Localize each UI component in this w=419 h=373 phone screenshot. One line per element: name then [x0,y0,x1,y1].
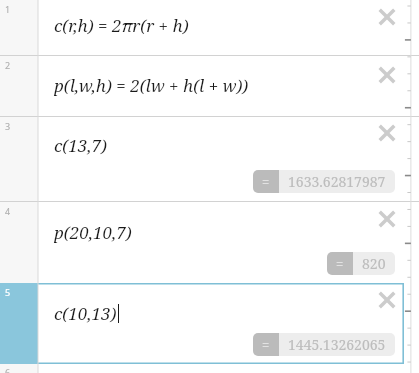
button[interactable]: 3 [0,117,38,201]
button[interactable]: 4 [0,202,38,283]
staticText: 3 [5,120,11,132]
staticText: = [262,173,270,191]
staticText: = [262,336,270,354]
staticText: = [336,255,344,273]
staticText: 6 [5,366,11,373]
button[interactable]: 2 [0,56,38,116]
button[interactable]: c(13,7) [38,117,404,201]
button[interactable]: Delete expression [374,120,400,146]
staticText: p(20,10,7) [54,221,132,244]
button[interactable]: c(r,h) = 2πr(r + h) [38,0,404,55]
staticText: 1633.62817987 [288,172,386,191]
staticText: p(l,w,h) = 2(lw + h(l + w)) [54,74,249,97]
button[interactable]: p(l,w,h) = 2(lw + h(l + w)) [38,56,404,116]
button[interactable]: c(10,13) [38,283,404,364]
button[interactable]: 5 [0,283,38,364]
staticText: 2 [5,59,11,71]
staticText: c(r,h) = 2πr(r + h) [54,14,189,37]
staticText: 5 [5,286,11,298]
staticText: c(13,7) [54,134,107,157]
button[interactable]: Delete expression [374,287,400,313]
staticText: 820 [362,254,386,273]
button[interactable]: = [327,252,395,275]
button[interactable]: 1 [0,0,38,55]
button[interactable]: Delete expression [374,206,400,232]
staticText: 1445.13262065 [288,335,386,354]
staticText: 4 [5,205,11,217]
button[interactable]: Delete expression [374,62,400,88]
button[interactable]: Delete expression [374,4,400,30]
button[interactable]: = [253,333,395,356]
button[interactable]: = [253,170,395,193]
staticText: 1 [5,3,11,15]
button[interactable]: 6 [0,364,38,373]
button[interactable]: p(20,10,7) [38,202,404,283]
staticText: c(10,13) [54,302,117,325]
